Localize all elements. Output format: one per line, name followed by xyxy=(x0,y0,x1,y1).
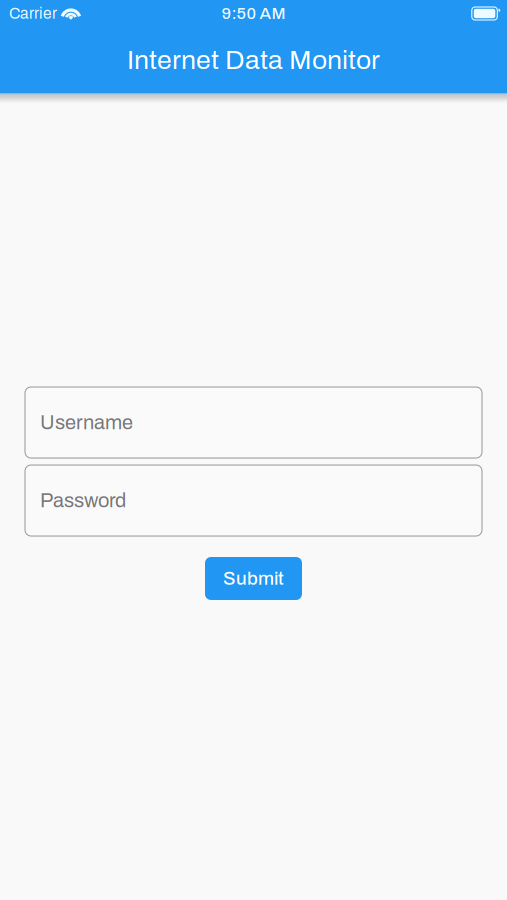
staticText: Submit xyxy=(223,568,284,589)
staticText: Username xyxy=(40,412,133,433)
button[interactable]: Submit xyxy=(205,557,302,600)
staticText: Carrier xyxy=(9,5,57,22)
staticText: Password xyxy=(40,490,126,511)
staticText: 9:50 AM xyxy=(221,4,285,22)
staticText: Internet Data Monitor xyxy=(127,45,380,74)
button[interactable]: Password xyxy=(25,465,482,536)
button[interactable]: Username xyxy=(25,387,482,458)
